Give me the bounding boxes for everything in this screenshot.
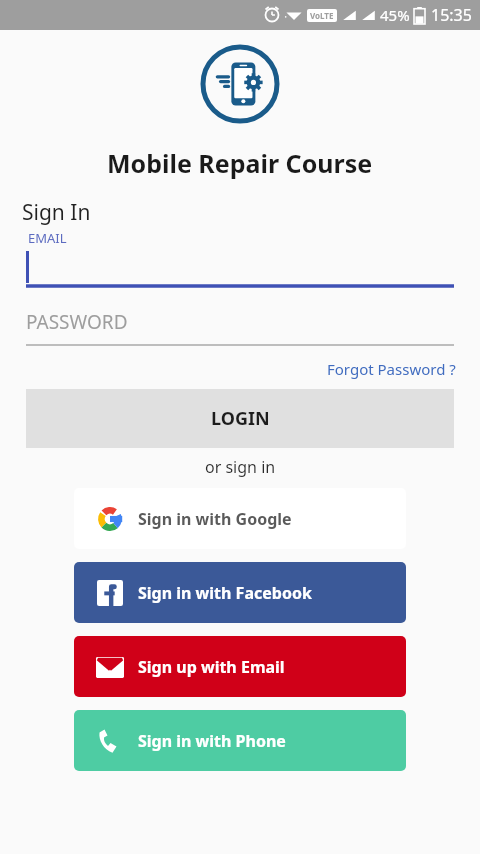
button[interactable]: Sign in with Google [74,488,406,549]
staticText: VoLTE [310,10,334,21]
staticText: Sign In [22,198,91,227]
button[interactable]: PASSWORD [26,305,454,347]
button[interactable]: Sign up with Email [74,636,406,697]
staticText: 15:35 [431,4,472,26]
staticText: Sign in with Google [138,508,292,530]
staticText: 45% [380,5,410,25]
staticText: Sign up with Email [138,656,285,678]
button[interactable] [26,247,454,289]
staticText: Sign in with Phone [138,730,286,752]
staticText: EMAIL [28,229,67,247]
staticText: Sign in with Facebook [138,582,312,604]
staticText: Mobile Repair Course [107,146,373,180]
staticText: or sign in [205,456,276,478]
button[interactable]: Sign in with Facebook [74,562,406,623]
button[interactable]: LOGIN [26,389,454,448]
button[interactable]: Sign in with Phone [74,710,406,771]
staticText: LOGIN [211,406,270,431]
staticText: PASSWORD [26,309,128,335]
button[interactable]: Forgot Password ? [327,357,480,381]
